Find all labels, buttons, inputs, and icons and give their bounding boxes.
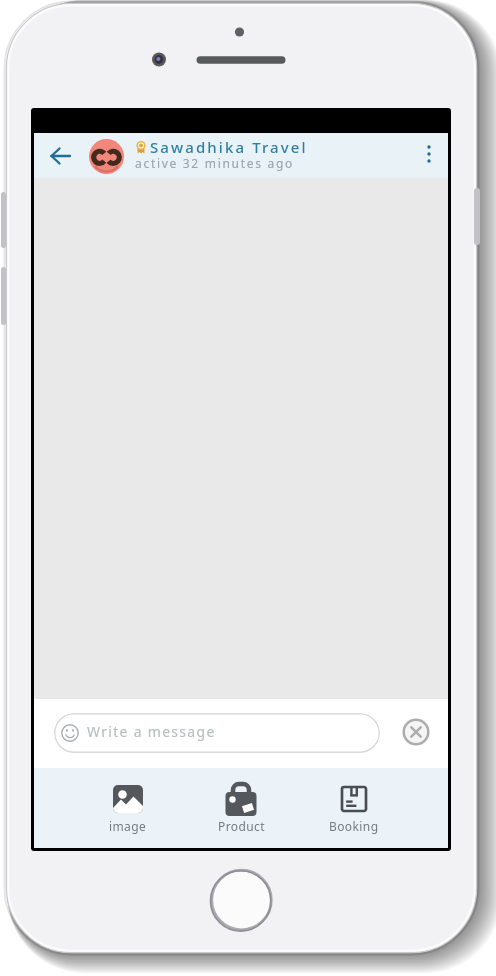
staticText: Sawadhika Travel — [150, 137, 308, 157]
button[interactable] — [412, 137, 445, 170]
button[interactable]: Booking — [304, 776, 404, 838]
button[interactable]: Product — [191, 776, 291, 838]
button[interactable] — [89, 139, 124, 174]
staticText: Booking — [329, 818, 379, 834]
staticText: active 32 minutes ago — [135, 155, 294, 171]
button[interactable] — [402, 718, 430, 746]
staticText: Product — [218, 818, 265, 834]
button[interactable]: image — [78, 776, 178, 838]
button[interactable] — [44, 139, 78, 173]
button[interactable]: Write a message — [54, 713, 380, 753]
staticText: image — [109, 818, 147, 834]
staticText: Write a message — [87, 722, 216, 741]
button[interactable]: Sawadhika Travel — [134, 137, 354, 157]
